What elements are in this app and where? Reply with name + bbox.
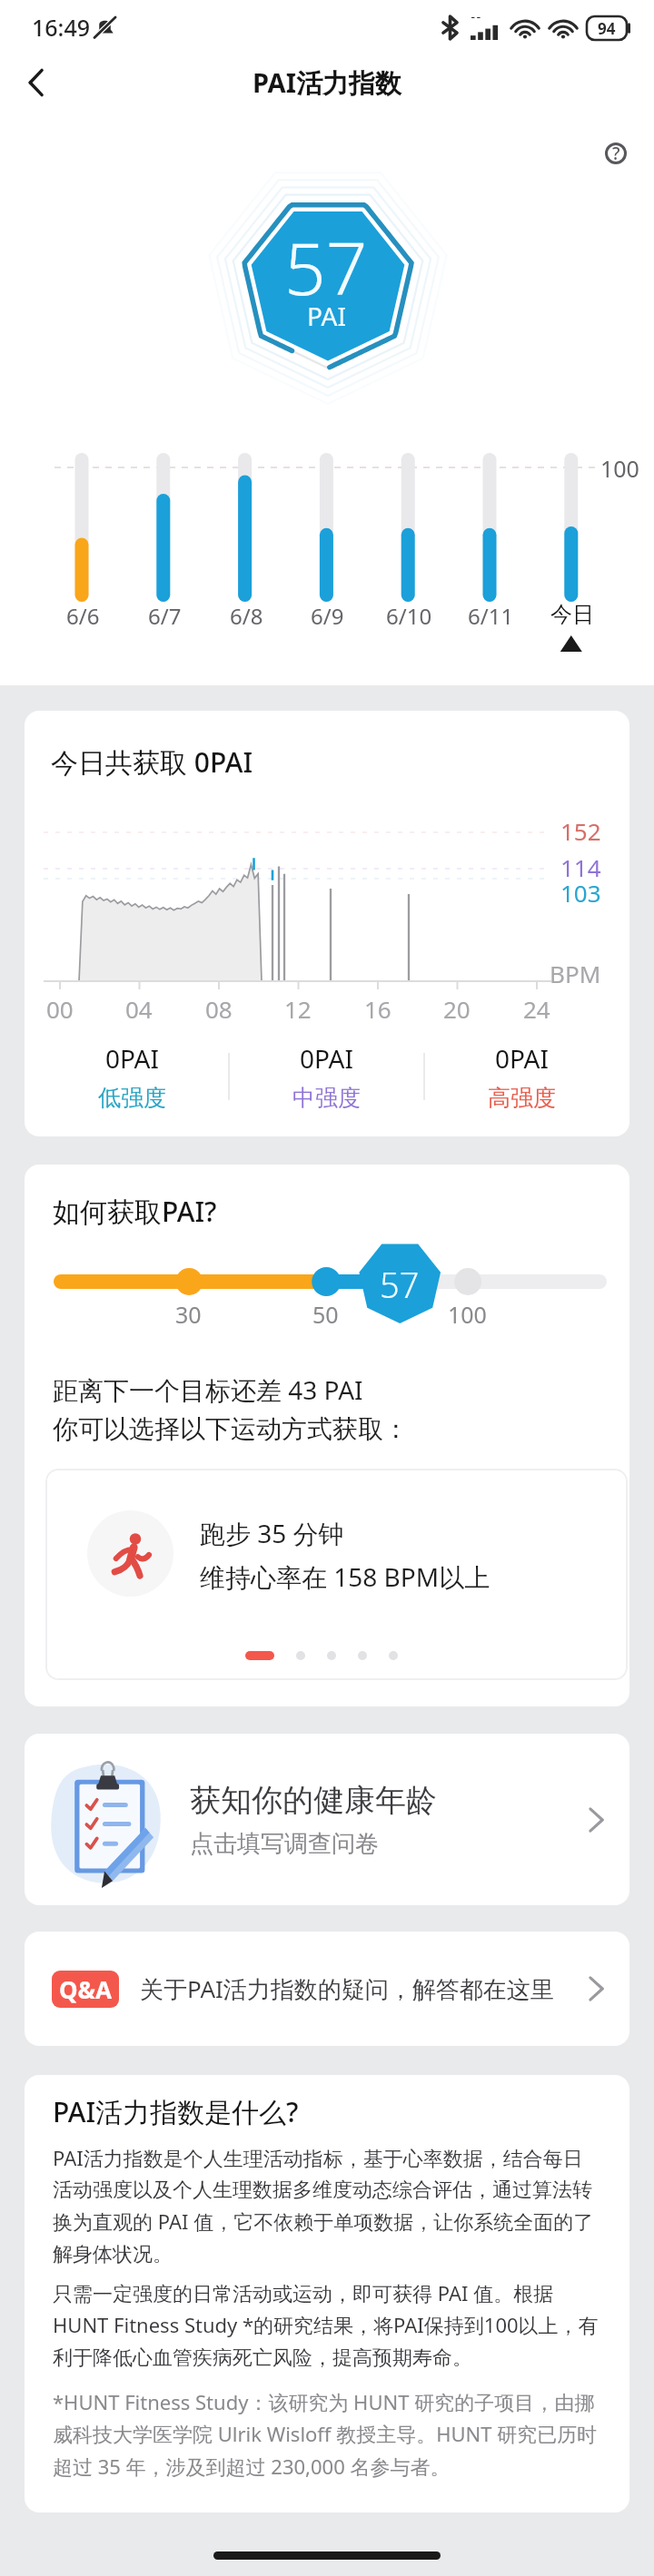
- staticText: 维持心率在 158 BPM以上: [200, 1559, 490, 1594]
- staticText: 你可以选择以下运动方式获取：: [53, 1413, 409, 1445]
- staticText: ?: [612, 142, 620, 165]
- staticText: 6/6: [66, 601, 100, 631]
- staticText: 如何获取PAI?: [53, 1193, 217, 1230]
- staticText: 04: [125, 993, 153, 1025]
- staticText: 100: [600, 453, 639, 484]
- staticText: 30: [175, 1299, 202, 1330]
- staticText: BPM: [550, 958, 601, 989]
- staticText: 低强度: [98, 1084, 166, 1112]
- staticText: 0PAI: [495, 1041, 549, 1076]
- staticText: 114: [560, 851, 601, 883]
- staticText: 6/9: [311, 601, 344, 631]
- staticText: 6/8: [230, 601, 263, 631]
- staticText: 50: [312, 1299, 339, 1330]
- button[interactable]: 跑步 35 分钟: [45, 1469, 628, 1680]
- staticText: 24: [523, 993, 550, 1025]
- staticText: 12: [284, 993, 312, 1025]
- staticText: 6/11: [468, 601, 514, 631]
- staticText: 57: [380, 1261, 420, 1308]
- staticText: 高强度: [488, 1084, 556, 1112]
- staticText: PAI活力指数是什么?: [53, 2093, 299, 2130]
- staticText: 距离下一个目标还差 43 PAI: [53, 1372, 363, 1407]
- staticText: 跑步 35 分钟: [200, 1516, 344, 1550]
- staticText: 20: [443, 993, 471, 1025]
- staticText: 0PAI: [105, 1041, 159, 1076]
- staticText: 16: [364, 993, 391, 1025]
- staticText: 152: [560, 815, 601, 847]
- staticText: PAI活力指数: [253, 64, 401, 101]
- staticText: 今日共获取 0PAI: [51, 743, 253, 781]
- staticText: 中强度: [292, 1084, 361, 1112]
- staticText: 关于PAI活力指数的疑问，解答都在这里: [140, 1972, 580, 2005]
- staticText: 08: [205, 993, 233, 1025]
- button[interactable]: 获知你的健康年龄: [25, 1734, 629, 1905]
- staticText: 16:49: [32, 12, 91, 43]
- staticText: 今日: [550, 601, 594, 628]
- staticText: PAI活力指数是个人生理活动指标，基于心率数据，结合每日活动强度以及个人生理数据…: [53, 2144, 601, 2267]
- staticText: 0PAI: [300, 1041, 353, 1076]
- staticText: PAI: [307, 299, 346, 333]
- button[interactable]: Back: [0, 54, 73, 111]
- button[interactable]: Q&A: [25, 1932, 629, 2046]
- staticText: *HUNT Fitness Study：该研究为 HUNT 研究的子项目，由挪威…: [53, 2388, 601, 2481]
- staticText: 获知你的健康年龄: [190, 1781, 437, 1820]
- staticText: 00: [46, 993, 74, 1025]
- staticText: 103: [560, 877, 601, 909]
- staticText: 94: [598, 18, 616, 39]
- staticText: 只需一定强度的日常活动或运动，即可获得 PAI 值。根据 HUNT Fitnes…: [53, 2279, 601, 2371]
- button[interactable]: Help: [594, 132, 638, 175]
- staticText: 6/7: [148, 601, 182, 631]
- staticText: 57: [284, 217, 368, 316]
- staticText: 6/10: [386, 601, 432, 631]
- staticText: 100: [448, 1299, 487, 1330]
- staticText: 点击填写调查问卷: [190, 1829, 379, 1859]
- staticText: Q&A: [59, 1973, 113, 2005]
